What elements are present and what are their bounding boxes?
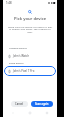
other: Home <box>28 111 32 115</box>
button[interactable]: Cancel <box>11 101 28 107</box>
button[interactable]: Scan again <box>31 101 53 107</box>
other: Back <box>11 111 15 115</box>
staticText: Available devices <box>9 47 27 50</box>
button[interactable]: John's Watch <box>4 51 56 61</box>
staticText: John's Pixel 7 Pro <box>13 69 35 73</box>
staticText: John's Watch <box>13 54 30 58</box>
staticText: Scan again <box>35 102 49 106</box>
staticText: Pick your device <box>14 16 47 22</box>
staticText: 1:48 <box>6 1 12 5</box>
staticText: Make sure the device you want to pair is… <box>7 25 53 34</box>
button[interactable]: John's Pixel 7 Pro <box>4 66 56 76</box>
staticText: Cancel <box>15 102 24 106</box>
staticText: Saved devices <box>9 62 24 65</box>
other: Recents <box>45 111 49 115</box>
